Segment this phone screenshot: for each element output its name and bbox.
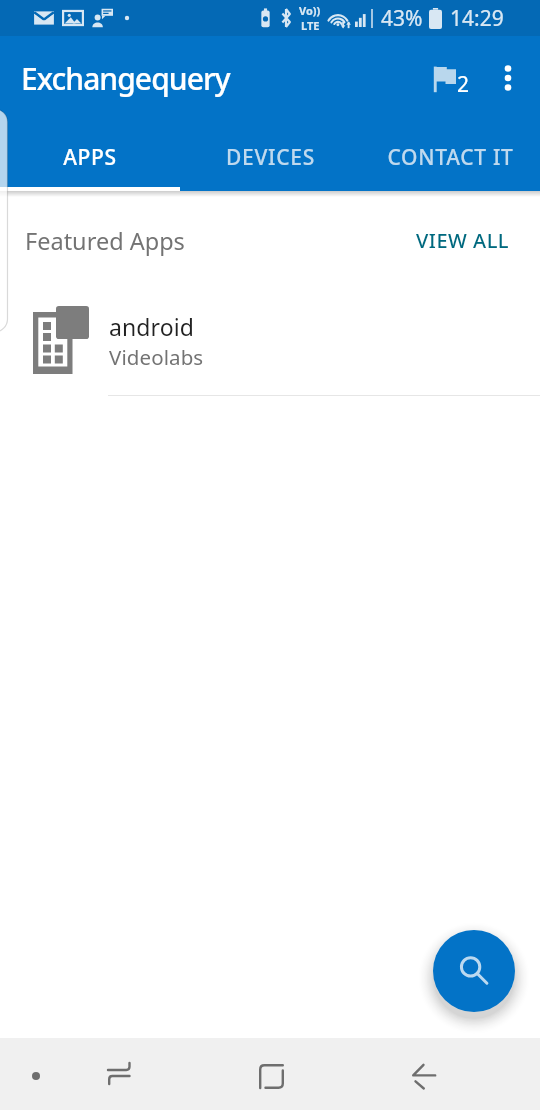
button[interactable]: DEVICES bbox=[180, 120, 360, 191]
staticText: Videolabs bbox=[109, 343, 204, 371]
staticText: DEVICES bbox=[226, 143, 315, 172]
button[interactable]: Flagged items: 2 bbox=[427, 42, 480, 114]
staticText: Featured Apps bbox=[25, 225, 185, 257]
staticText: android bbox=[109, 311, 194, 342]
button[interactable]: CONTACT IT bbox=[360, 120, 540, 191]
staticText: 14:29 bbox=[450, 4, 504, 33]
button[interactable]: Home bbox=[215, 1038, 328, 1110]
staticText: 43% bbox=[381, 4, 423, 33]
button[interactable]: VIEW ALL bbox=[410, 218, 515, 265]
staticText: Vo)) bbox=[299, 3, 321, 18]
staticText: 2 bbox=[457, 70, 470, 99]
staticText: VIEW ALL bbox=[416, 227, 509, 254]
button[interactable]: Search bbox=[433, 930, 515, 1012]
button[interactable]: Back bbox=[367, 1038, 480, 1110]
button[interactable]: More options bbox=[480, 50, 536, 106]
staticText: CONTACT IT bbox=[387, 143, 514, 172]
staticText: LTE bbox=[301, 18, 320, 33]
button[interactable]: android bbox=[0, 285, 540, 395]
button[interactable]: APPS bbox=[0, 120, 180, 191]
staticText: Exchangequery bbox=[21, 58, 230, 99]
button[interactable]: Show menu bbox=[0, 1038, 71, 1110]
staticText: APPS bbox=[63, 143, 117, 172]
button[interactable]: Recent apps bbox=[71, 1038, 170, 1110]
